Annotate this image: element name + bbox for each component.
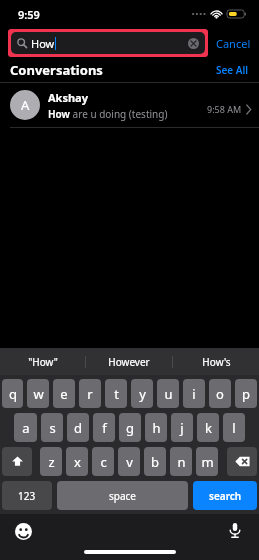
- staticText: How: [31, 36, 55, 51]
- staticText: w: [33, 385, 44, 403]
- staticText: o: [216, 385, 224, 403]
- staticText: However: [108, 355, 150, 369]
- button[interactable]: Dictation: [225, 520, 245, 540]
- staticText: h: [152, 419, 161, 437]
- button[interactable]: h: [145, 413, 167, 442]
- staticText: b: [151, 453, 159, 471]
- button[interactable]: j: [171, 413, 193, 442]
- button[interactable]: d: [67, 413, 89, 442]
- button[interactable]: Clear text: [188, 38, 199, 49]
- button[interactable]: z: [40, 447, 62, 476]
- button[interactable]: A: [0, 83, 259, 127]
- staticText: y: [139, 385, 146, 403]
- button[interactable]: t: [105, 379, 127, 408]
- button[interactable]: q: [2, 379, 23, 408]
- staticText: m: [201, 453, 214, 471]
- staticText: z: [48, 453, 55, 471]
- staticText: u: [164, 385, 173, 403]
- button[interactable]: u: [157, 379, 179, 408]
- button[interactable]: space: [57, 481, 188, 510]
- staticText: How's: [202, 355, 231, 369]
- button[interactable]: f: [93, 413, 115, 442]
- staticText: 9:59: [18, 7, 40, 22]
- button[interactable]: l: [223, 413, 245, 442]
- staticText: Cancel: [216, 36, 251, 51]
- staticText: 123: [18, 489, 36, 503]
- staticText: s: [49, 419, 56, 437]
- staticText: i: [192, 385, 196, 403]
- button[interactable]: w: [27, 379, 49, 408]
- button[interactable]: x: [66, 447, 88, 476]
- staticText: j: [180, 419, 184, 437]
- button[interactable]: Emoji: [14, 522, 32, 540]
- button[interactable]: p: [235, 379, 257, 408]
- button[interactable]: v: [118, 447, 140, 476]
- staticText: p: [242, 385, 250, 403]
- staticText: q: [9, 385, 17, 403]
- button[interactable]: n: [170, 447, 192, 476]
- staticText: space: [109, 489, 136, 503]
- button[interactable]: r: [79, 379, 101, 408]
- staticText: t: [114, 385, 119, 403]
- button[interactable]: a: [14, 413, 37, 442]
- button[interactable]: m: [196, 447, 218, 476]
- staticText: are u doing (testing): [70, 107, 168, 121]
- staticText: f: [102, 419, 107, 437]
- staticText: g: [126, 419, 134, 437]
- button[interactable]: See All: [216, 63, 249, 77]
- staticText: Conversations: [10, 61, 103, 79]
- button[interactable]: e: [53, 379, 75, 408]
- button[interactable]: c: [92, 447, 114, 476]
- button[interactable]: k: [197, 413, 219, 442]
- button[interactable]: g: [119, 413, 141, 442]
- button[interactable]: i: [183, 379, 205, 408]
- button[interactable]: Backspace: [227, 447, 257, 476]
- button[interactable]: Shift: [2, 447, 32, 476]
- button[interactable]: Cancel: [208, 36, 259, 51]
- button[interactable]: How: [11, 32, 205, 54]
- staticText: How: [48, 107, 70, 121]
- staticText: l: [232, 419, 236, 437]
- staticText: search: [209, 489, 242, 503]
- staticText: c: [100, 453, 107, 471]
- staticText: "How": [28, 355, 58, 369]
- staticText: d: [74, 419, 82, 437]
- staticText: n: [177, 453, 186, 471]
- button[interactable]: s: [41, 413, 63, 442]
- button[interactable]: However: [86, 348, 172, 375]
- button[interactable]: o: [209, 379, 231, 408]
- staticText: x: [74, 453, 81, 471]
- button[interactable]: How's: [173, 348, 259, 375]
- button[interactable]: b: [144, 447, 166, 476]
- staticText: 9:58 AM: [207, 103, 242, 115]
- staticText: v: [126, 453, 133, 471]
- staticText: e: [60, 385, 68, 403]
- button[interactable]: 123: [2, 481, 52, 510]
- button[interactable]: "How": [0, 348, 85, 375]
- staticText: A: [21, 96, 30, 114]
- staticText: See All: [216, 63, 249, 77]
- staticText: a: [22, 419, 30, 437]
- button[interactable]: search: [193, 481, 257, 510]
- staticText: Akshay: [48, 90, 88, 105]
- staticText: r: [87, 385, 93, 403]
- staticText: k: [205, 419, 212, 437]
- button[interactable]: y: [131, 379, 153, 408]
